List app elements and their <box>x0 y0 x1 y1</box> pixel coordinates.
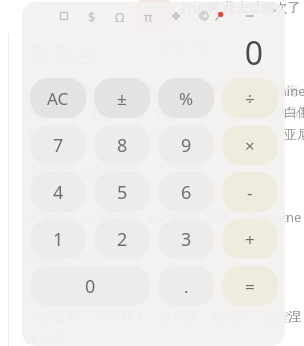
staticText: 0 <box>244 31 263 75</box>
staticText: 外文名： 乌克兰语：УКРАЇНА,英语：Ukraine <box>26 208 290 226</box>
button[interactable]: Close <box>272 8 277 24</box>
button[interactable]: 3 <box>158 219 214 259</box>
staticText: 5 <box>117 180 128 205</box>
staticText: 7 <box>53 133 64 158</box>
button[interactable]: Copyright <box>196 8 212 24</box>
button[interactable]: × <box>222 125 278 165</box>
button[interactable]: Standard <box>56 8 72 24</box>
staticText: 0 <box>85 274 96 299</box>
staticText: 乌克兰，位于欧洲东部，东接俄罗斯，南濒黑海，北与白俄 <box>26 82 304 98</box>
staticText: 2 <box>117 227 128 252</box>
button[interactable]: Pin on top <box>212 8 228 24</box>
staticText: 6 <box>181 180 192 205</box>
staticText: 4 <box>53 180 64 205</box>
staticText: $ <box>88 8 96 24</box>
button[interactable]: AC <box>30 78 86 118</box>
staticText: 瓦诸国相连。乌克兰地理位… <box>26 126 193 144</box>
staticText: AC <box>47 87 69 110</box>
button[interactable]: Unit <box>112 8 128 24</box>
staticText: 9 <box>181 133 192 158</box>
button[interactable]: 4 <box>30 172 86 212</box>
staticText: 亚尼 <box>284 126 304 142</box>
staticText: 3 <box>181 227 192 252</box>
staticText: 涅 <box>288 308 301 324</box>
button[interactable]: Currency <box>84 8 100 24</box>
staticText: Ukraine <box>258 82 304 100</box>
staticText: . <box>184 275 189 298</box>
button[interactable]: 7 <box>30 125 86 165</box>
button[interactable]: 0 <box>30 266 150 306</box>
button[interactable]: % <box>158 78 214 118</box>
staticText: 8 <box>117 133 128 158</box>
button[interactable]: Move <box>168 8 184 24</box>
staticText: 1 <box>53 227 64 252</box>
staticText: π <box>144 8 153 24</box>
button[interactable]: 2 <box>94 219 150 259</box>
staticText: Ω <box>115 8 125 24</box>
button[interactable]: - <box>222 172 278 212</box>
button[interactable]: . <box>158 266 214 306</box>
staticText: 主要城市： 哈尔科夫，文尼察，敖德萨，顿涅 <box>26 308 290 326</box>
staticText: 罗斯为邻、西与波兰、斯洛伐克、匈牙利、罗马尼亚、摩尔 <box>26 104 304 120</box>
staticText: - <box>247 181 253 204</box>
staticText: ± <box>117 87 127 110</box>
button[interactable]: 9 <box>158 125 214 165</box>
staticText: = <box>245 275 255 298</box>
button[interactable]: ÷ <box>222 78 278 118</box>
staticText: ne <box>286 208 302 226</box>
staticText: 首都： 基辅 <box>26 286 95 304</box>
button[interactable]: 1 <box>30 219 86 259</box>
button[interactable]: 5 <box>94 172 150 212</box>
staticText: × <box>245 134 255 157</box>
staticText: 白俄 <box>284 104 304 120</box>
button[interactable]: 8 <box>94 125 150 165</box>
button[interactable]: + <box>222 219 278 259</box>
button[interactable]: 6 <box>158 172 214 212</box>
staticText: % <box>179 87 194 110</box>
button[interactable]: ± <box>94 78 150 118</box>
staticText: 好远啊 我去过两次了 <box>180 0 301 16</box>
button[interactable]: = <box>222 266 278 306</box>
button[interactable]: Minimize <box>242 8 258 24</box>
button[interactable]: Scientific <box>140 8 156 24</box>
staticText: ÷ <box>245 87 255 110</box>
staticText: + <box>245 228 255 251</box>
